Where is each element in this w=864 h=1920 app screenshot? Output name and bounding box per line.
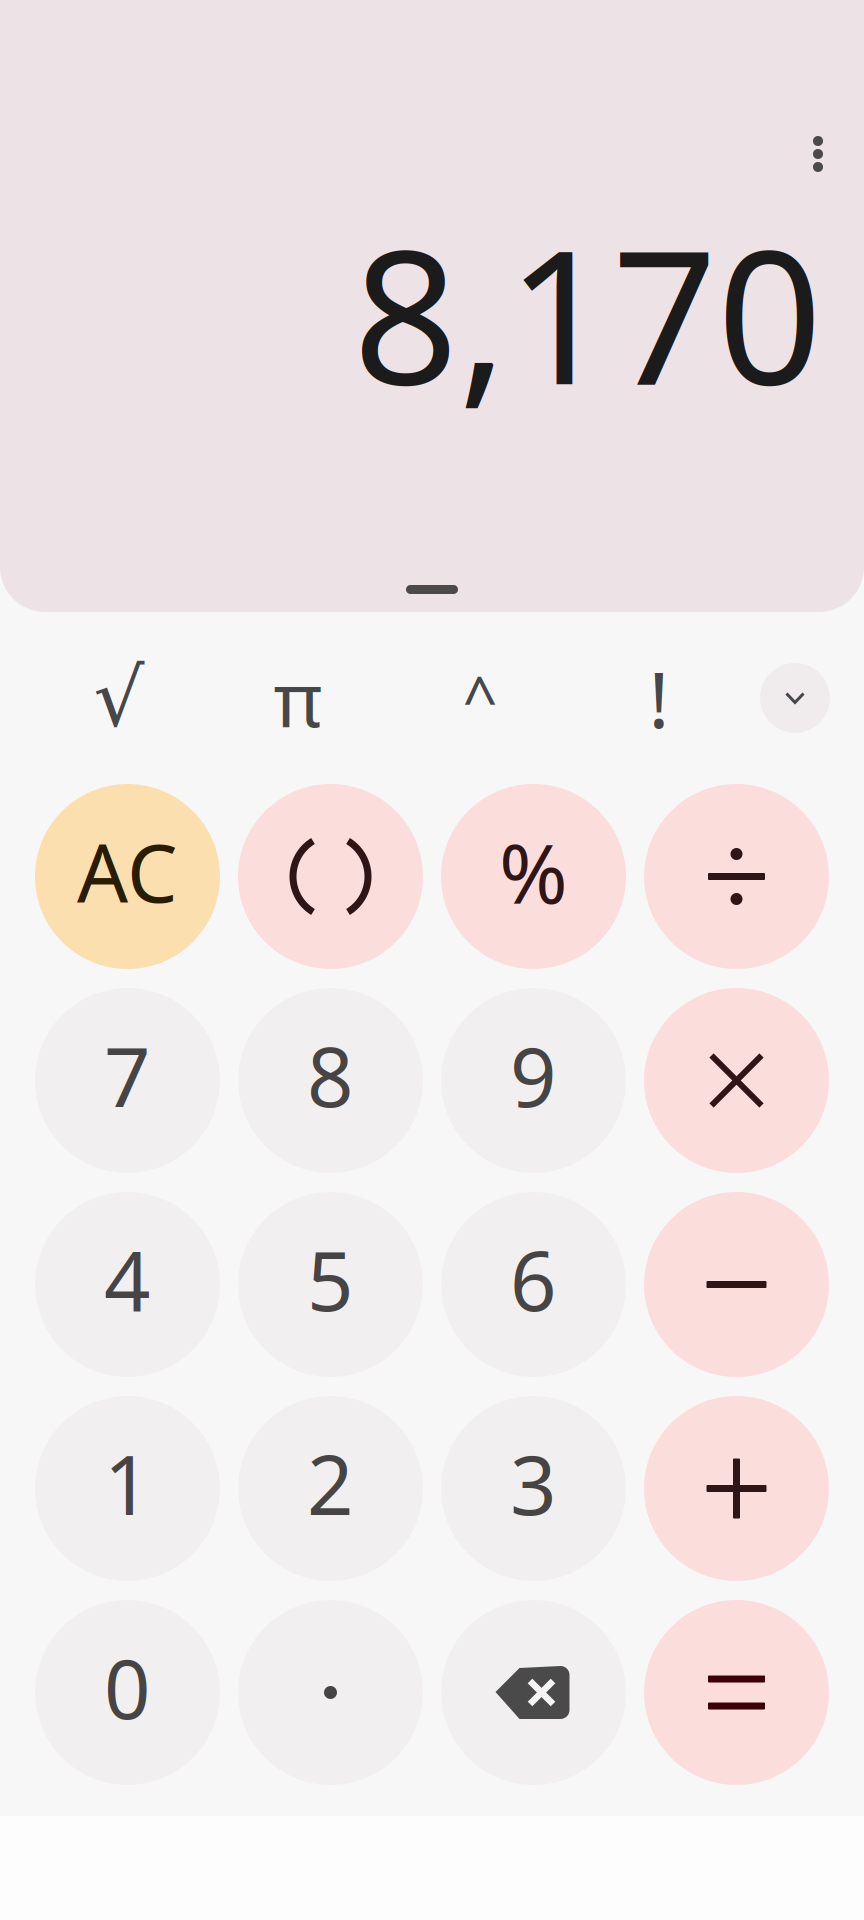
button[interactable]: 0 [35, 1600, 220, 1785]
staticText: ^ [462, 657, 497, 739]
button[interactable]: Plus [644, 1396, 829, 1581]
button[interactable]: 2 [238, 1396, 423, 1581]
button[interactable]: 5 [238, 1192, 423, 1377]
button[interactable]: Collapse [735, 633, 855, 763]
staticText: 0 [104, 1633, 151, 1741]
button[interactable]: Divide [644, 784, 829, 969]
staticText: AC [77, 818, 178, 925]
button[interactable]: Parentheses [238, 784, 423, 969]
staticText: 5 [307, 1225, 354, 1333]
staticText: % [499, 817, 568, 926]
button[interactable]: π [238, 633, 358, 763]
button[interactable]: More options [786, 122, 850, 186]
staticText: 1 [104, 1429, 151, 1537]
staticText: ! [648, 647, 669, 749]
button[interactable]: 3 [441, 1396, 626, 1581]
staticText: 8,170 [353, 191, 822, 435]
staticText: 8 [307, 1021, 354, 1129]
button[interactable]: 1 [35, 1396, 220, 1581]
button[interactable]: Equals [644, 1600, 829, 1785]
button[interactable]: Minus [644, 1192, 829, 1377]
button[interactable]: AC [35, 784, 220, 969]
button[interactable]: Multiply [644, 988, 829, 1173]
button[interactable]: 6 [441, 1192, 626, 1377]
button[interactable]: 7 [35, 988, 220, 1173]
button[interactable]: 9 [441, 988, 626, 1173]
staticText: 4 [104, 1225, 151, 1333]
staticText: 7 [104, 1021, 151, 1129]
button[interactable]: √ [59, 633, 179, 763]
staticText: 3 [510, 1429, 557, 1537]
button[interactable]: Decimal point [238, 1600, 423, 1785]
staticText: 2 [307, 1429, 354, 1537]
staticText: 9 [510, 1021, 557, 1129]
staticText: 6 [510, 1225, 557, 1333]
staticText: √ [93, 653, 144, 743]
staticText: π [273, 648, 322, 748]
button[interactable]: Delete [441, 1600, 626, 1785]
button[interactable]: 4 [35, 1192, 220, 1377]
button[interactable]: ! [599, 633, 719, 763]
button[interactable]: 8 [238, 988, 423, 1173]
button[interactable]: ^ [420, 633, 540, 763]
button[interactable]: % [441, 784, 626, 969]
